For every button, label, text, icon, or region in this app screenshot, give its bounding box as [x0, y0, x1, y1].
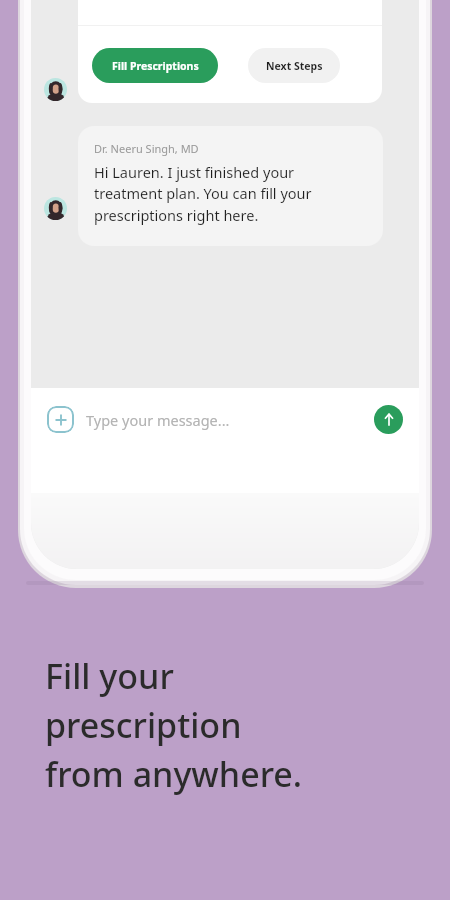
button[interactable]: Next Steps	[248, 48, 340, 83]
staticText: Type your message...	[86, 410, 230, 430]
button[interactable]: Dr. Neeru Singh, MD	[78, 126, 383, 246]
staticText: Fill Prescriptions	[112, 59, 199, 73]
button[interactable]: Fill Prescriptions	[92, 48, 218, 83]
button[interactable]: Send message	[374, 405, 403, 434]
button[interactable]: Add attachment	[47, 406, 74, 433]
staticText: Dr. Neeru Singh, MD	[94, 141, 199, 156]
staticText: Fill your prescription from anywhere.	[45, 653, 303, 797]
staticText: Hi Lauren. I just finished your treatmen…	[94, 162, 312, 225]
button[interactable]: Type your message...	[86, 410, 374, 430]
staticText: Next Steps	[266, 59, 323, 73]
